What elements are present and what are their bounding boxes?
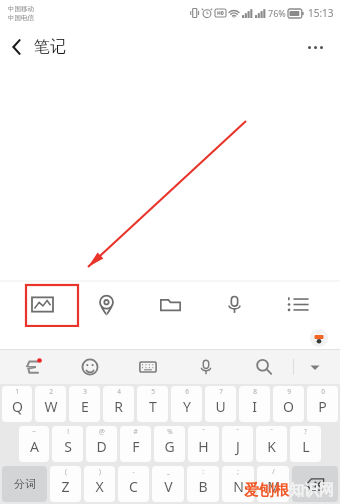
staticText: V <box>164 477 173 496</box>
button[interactable]: @ <box>86 426 117 462</box>
button[interactable]: 分词 <box>2 466 47 502</box>
button[interactable]: # <box>120 426 151 462</box>
button[interactable]: Collapse <box>294 350 336 384</box>
staticText: - <box>132 467 135 476</box>
staticText: ˇ <box>236 427 239 436</box>
staticText: % <box>167 427 173 436</box>
button[interactable]: Assistant <box>310 329 328 347</box>
button[interactable]: More options <box>296 28 334 66</box>
staticText: 爱刨根 <box>244 481 289 500</box>
staticText: ˇ <box>270 427 273 436</box>
staticText: J <box>236 437 240 456</box>
staticText: @ <box>99 427 105 436</box>
staticText: ( <box>65 467 67 476</box>
button[interactable]: Search <box>235 350 293 384</box>
button[interactable]: 5 <box>137 386 168 422</box>
button[interactable]: 4 <box>103 386 134 422</box>
staticText: G <box>164 437 175 456</box>
staticText: O <box>283 397 294 416</box>
button[interactable]: 3 <box>69 386 100 422</box>
staticText: K <box>267 437 276 456</box>
staticText: M <box>267 477 280 496</box>
staticText: X <box>95 477 104 496</box>
staticText: 0 <box>321 387 325 396</box>
staticText: C <box>129 477 138 496</box>
staticText: 5 <box>151 387 155 396</box>
staticText: B <box>198 477 208 496</box>
staticText: / <box>272 467 275 476</box>
staticText: ; <box>237 467 239 476</box>
button[interactable]: Folder <box>148 282 192 326</box>
button[interactable]: ? <box>290 426 321 462</box>
staticText: ) <box>99 467 101 476</box>
staticText: 2 <box>49 387 53 396</box>
staticText: 6 <box>185 387 189 396</box>
staticText: U <box>215 397 226 416</box>
button[interactable]: : <box>187 466 219 502</box>
button[interactable]: 6 <box>171 386 202 422</box>
button[interactable]: ~ <box>19 426 49 462</box>
staticText: 9 <box>287 387 291 396</box>
staticText: 4 <box>117 387 121 396</box>
button[interactable]: Voice <box>212 282 256 326</box>
staticText: 7 <box>219 387 223 396</box>
button[interactable]: ; <box>222 466 254 502</box>
staticText: N <box>233 477 244 496</box>
staticText: 笔记 <box>34 37 66 57</box>
staticText: 15:13 <box>308 6 334 20</box>
button[interactable]: Back <box>0 30 34 64</box>
button[interactable]: _ <box>152 466 184 502</box>
staticText: D <box>96 437 107 456</box>
button[interactable]: 1 <box>2 386 32 422</box>
button[interactable]: Keyboard <box>119 350 177 384</box>
staticText: 中国移动 <box>8 5 34 13</box>
staticText: 76% <box>268 7 286 19</box>
button[interactable]: Sogou <box>4 350 61 384</box>
staticText: ˇ <box>202 427 205 436</box>
staticText: H <box>198 437 209 456</box>
button[interactable]: List <box>276 282 320 326</box>
staticText: # <box>133 427 138 436</box>
staticText: 3 <box>83 387 87 396</box>
button[interactable]: ) <box>84 466 115 502</box>
staticText: ! <box>67 427 69 436</box>
staticText: A <box>30 437 39 456</box>
button[interactable]: Backspace <box>292 466 338 502</box>
staticText: T <box>149 397 157 416</box>
button[interactable]: ˇ <box>188 426 219 462</box>
staticText: I <box>252 397 257 416</box>
staticText: ? <box>304 427 307 436</box>
staticText: : <box>202 467 204 476</box>
button[interactable]: Voice input <box>177 350 235 384</box>
button[interactable]: 2 <box>35 386 66 422</box>
button[interactable]: Location <box>84 282 128 326</box>
staticText: S <box>64 437 72 456</box>
button[interactable]: ( <box>50 466 81 502</box>
staticText: R <box>114 397 123 416</box>
button[interactable]: / <box>257 466 289 502</box>
staticText: E <box>81 397 89 416</box>
button[interactable]: Insert image <box>20 282 64 326</box>
staticText: 8 <box>253 387 257 396</box>
staticText: 中国电信 <box>8 14 34 22</box>
button[interactable]: ˇ <box>222 426 253 462</box>
staticText: _ <box>167 467 170 476</box>
button[interactable]: 9 <box>273 386 304 422</box>
button[interactable]: Emoji <box>61 350 119 384</box>
staticText: 1 <box>15 387 19 396</box>
button[interactable]: 8 <box>239 386 270 422</box>
staticText: L <box>302 437 310 456</box>
button[interactable]: 7 <box>205 386 236 422</box>
staticText: W <box>44 397 58 416</box>
button[interactable]: 0 <box>307 386 338 422</box>
staticText: Q <box>12 397 23 416</box>
staticText: ~ <box>32 427 36 436</box>
button[interactable]: - <box>118 466 149 502</box>
staticText: 知识网 <box>289 481 334 500</box>
staticText: Z <box>61 477 70 496</box>
button[interactable]: ˇ <box>256 426 287 462</box>
button[interactable]: ! <box>52 426 83 462</box>
button[interactable]: % <box>154 426 185 462</box>
staticText: F <box>132 437 140 456</box>
staticText: P <box>318 397 327 416</box>
